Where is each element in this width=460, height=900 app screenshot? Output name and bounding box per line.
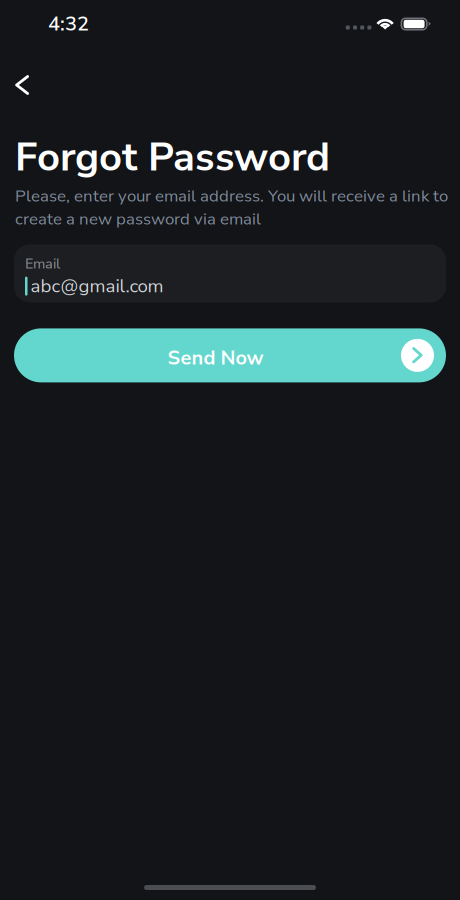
staticText: Send Now (167, 344, 263, 372)
button[interactable]: Send Now (14, 328, 446, 382)
staticText: Email (25, 254, 60, 273)
staticText: Forgot Password (15, 130, 330, 185)
button[interactable]: Back (0, 48, 62, 95)
staticText: 4:32 (48, 10, 89, 38)
staticText: Please, enter your email address. You wi… (15, 185, 448, 230)
staticText: abc@gmail.com (30, 273, 163, 299)
